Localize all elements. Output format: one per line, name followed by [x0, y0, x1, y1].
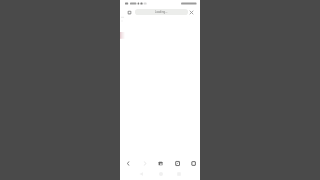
button[interactable]: Home	[154, 157, 167, 170]
button[interactable]: Stop loading	[187, 8, 195, 16]
button[interactable]: Back	[122, 157, 135, 170]
button[interactable]: Loading…	[135, 9, 188, 15]
button[interactable]: More options	[187, 157, 200, 170]
button[interactable]: Recent apps	[174, 169, 184, 179]
button[interactable]: Back	[136, 169, 146, 179]
button[interactable]: Home	[125, 8, 133, 16]
staticText: Loading…	[155, 10, 168, 14]
button[interactable]: Tabs	[171, 157, 184, 170]
button[interactable]: Home	[156, 169, 166, 179]
